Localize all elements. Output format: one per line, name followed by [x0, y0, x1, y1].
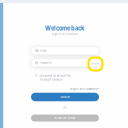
button[interactable]: Email	[31, 47, 99, 54]
staticText: SIGN UP NOW	[54, 116, 75, 120]
button[interactable]: Forgot your password?	[31, 87, 99, 91]
staticText: SHOW	[91, 62, 98, 65]
staticText: Forgot your password?	[70, 87, 99, 91]
button[interactable]: Password	[31, 59, 99, 66]
staticText: Welcome back	[45, 25, 84, 32]
staticText: Terms of Service.	[39, 78, 64, 81]
staticText: Sign in to continue	[52, 32, 78, 36]
button[interactable]: SHOW	[90, 61, 100, 66]
button[interactable]: LOGIN	[31, 93, 99, 101]
staticText: LOGIN	[60, 95, 70, 99]
button[interactable]: SIGN UP NOW	[31, 114, 99, 121]
staticText: Email	[40, 49, 47, 52]
button[interactable]: Click here to accept the	[35, 74, 99, 81]
staticText: Click here to accept the	[39, 74, 71, 77]
staticText: or	[63, 106, 66, 109]
staticText: Password	[40, 61, 52, 64]
